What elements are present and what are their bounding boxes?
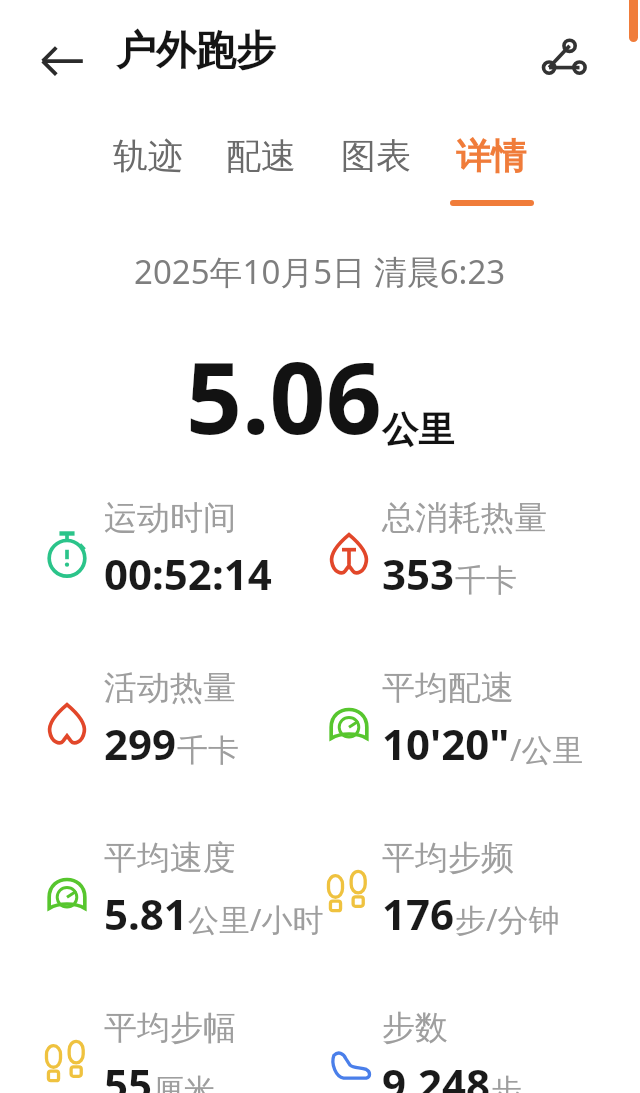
staticText: 总消耗热量	[382, 497, 547, 539]
button[interactable]: Back	[36, 34, 88, 86]
staticText: 图表	[341, 134, 411, 178]
staticText: 公里	[382, 407, 454, 452]
button[interactable]	[34, 837, 324, 947]
staticText: 活动热量	[104, 667, 236, 709]
button[interactable]	[34, 497, 324, 607]
staticText: /公里	[510, 728, 584, 770]
staticText: 平均配速	[382, 667, 514, 709]
button[interactable]	[316, 1007, 606, 1093]
button[interactable]	[316, 497, 606, 607]
staticText: 户外跑步	[116, 25, 276, 75]
staticText: 厘米	[153, 1071, 215, 1093]
staticText: 配速	[226, 134, 296, 178]
staticText: 详情	[456, 134, 526, 178]
button[interactable]	[316, 837, 606, 947]
button[interactable]: 轨迹	[92, 134, 204, 210]
staticText: 00:52:14	[104, 545, 272, 602]
staticText: 步/分钟	[455, 898, 560, 940]
staticText: 5.06	[186, 329, 382, 462]
button[interactable]: 详情	[435, 134, 547, 210]
button[interactable]	[316, 667, 606, 777]
staticText: 平均速度	[104, 837, 236, 879]
button[interactable]	[34, 667, 324, 777]
staticText: 5.81	[104, 885, 188, 942]
staticText: 公里/小时	[188, 898, 324, 940]
button[interactable]	[34, 1007, 324, 1093]
staticText: 平均步频	[382, 837, 514, 879]
staticText: 轨迹	[113, 134, 183, 178]
staticText: 176	[382, 885, 455, 942]
button[interactable]: Share	[528, 26, 594, 92]
staticText: 运动时间	[104, 497, 236, 539]
staticText: 2025年10月5日 清晨6:23	[134, 249, 506, 294]
staticText: 步数	[382, 1007, 448, 1049]
staticText: 步	[491, 1071, 522, 1093]
staticText: 353	[382, 545, 455, 602]
staticText: 55	[104, 1055, 153, 1093]
button[interactable]: 配速	[205, 134, 317, 210]
staticText: 千卡	[455, 561, 517, 600]
button[interactable]: 图表	[320, 134, 432, 210]
staticText: 千卡	[177, 731, 239, 770]
staticText: 10'20"	[382, 715, 510, 772]
staticText: 9,248	[382, 1055, 491, 1093]
staticText: 平均步幅	[104, 1007, 236, 1049]
staticText: 299	[104, 715, 177, 772]
